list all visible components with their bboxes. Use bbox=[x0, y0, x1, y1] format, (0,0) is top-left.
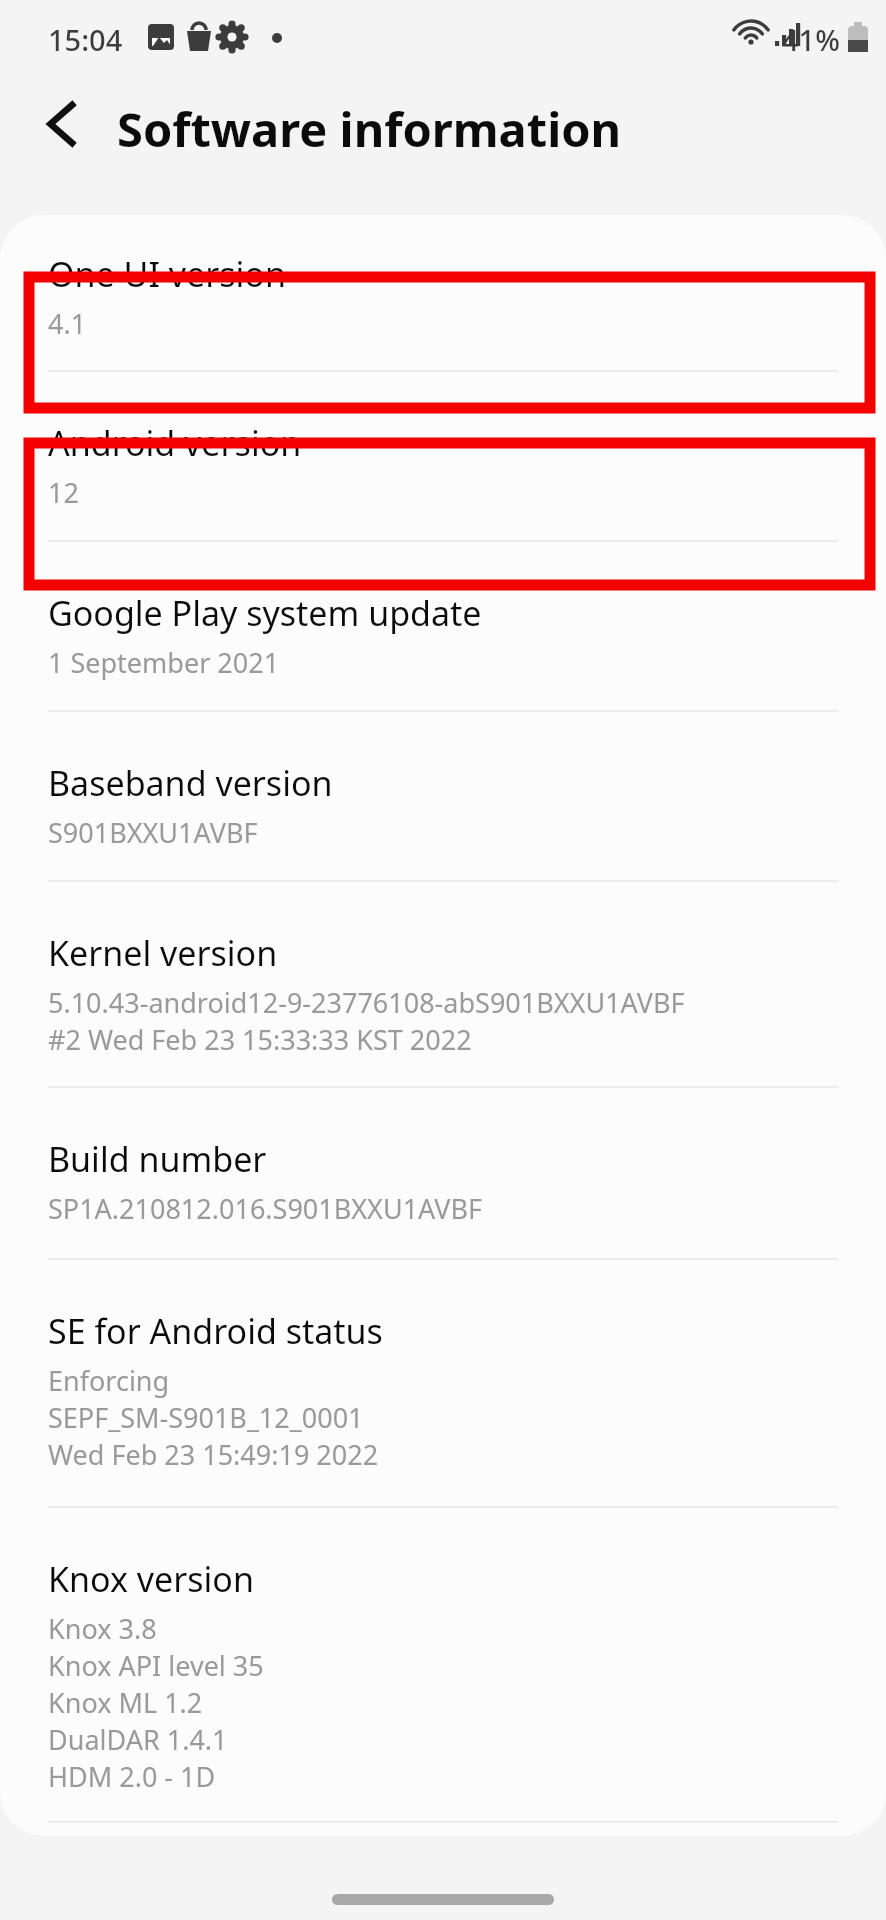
button[interactable]: Back bbox=[30, 90, 98, 158]
button[interactable]: Build number bbox=[0, 1088, 886, 1258]
button[interactable]: One UI version bbox=[0, 215, 886, 370]
button[interactable]: Kernel version bbox=[0, 882, 886, 1086]
staticText: One UI version bbox=[48, 251, 286, 297]
staticText: Software information bbox=[117, 97, 622, 161]
staticText: Knox version bbox=[48, 1556, 254, 1602]
staticText: S901BXXU1AVBF bbox=[48, 814, 258, 851]
staticText: Build number bbox=[48, 1136, 267, 1182]
staticText: HDM 2.0 - 1D bbox=[48, 1758, 216, 1795]
staticText: SP1A.210812.016.S901BXXU1AVBF bbox=[48, 1190, 483, 1227]
button[interactable]: Google Play system update bbox=[0, 542, 886, 710]
staticText: Knox ML 1.2 bbox=[48, 1684, 203, 1721]
staticText: 12 bbox=[48, 474, 79, 511]
button[interactable]: Knox version bbox=[0, 1508, 886, 1821]
button[interactable]: SE for Android status bbox=[0, 1260, 886, 1506]
staticText: SEPF_SM-S901B_12_0001 bbox=[48, 1399, 364, 1436]
staticText: #2 Wed Feb 23 15:33:33 KST 2022 bbox=[48, 1021, 472, 1058]
staticText: Google Play system update bbox=[48, 590, 482, 636]
staticText: Wed Feb 23 15:49:19 2022 bbox=[48, 1436, 379, 1473]
staticText: Knox API level 35 bbox=[48, 1647, 264, 1684]
staticText: Enforcing bbox=[48, 1362, 170, 1399]
staticText: Baseband version bbox=[48, 760, 333, 806]
button[interactable]: Android version bbox=[0, 372, 886, 540]
staticText: 4.1 bbox=[48, 305, 87, 342]
staticText: 5.10.43-android12-9-23776108-abS901BXXU1… bbox=[48, 984, 685, 1021]
staticText: Knox 3.8 bbox=[48, 1610, 157, 1647]
staticText: 15:04 bbox=[48, 20, 123, 59]
staticText: SE for Android status bbox=[48, 1308, 383, 1354]
staticText: 1 September 2021 bbox=[48, 644, 280, 681]
button[interactable]: Baseband version bbox=[0, 712, 886, 880]
staticText: Android version bbox=[48, 420, 302, 466]
staticText: Kernel version bbox=[48, 930, 278, 976]
staticText: 41% bbox=[782, 20, 840, 59]
staticText: DualDAR 1.4.1 bbox=[48, 1721, 228, 1758]
